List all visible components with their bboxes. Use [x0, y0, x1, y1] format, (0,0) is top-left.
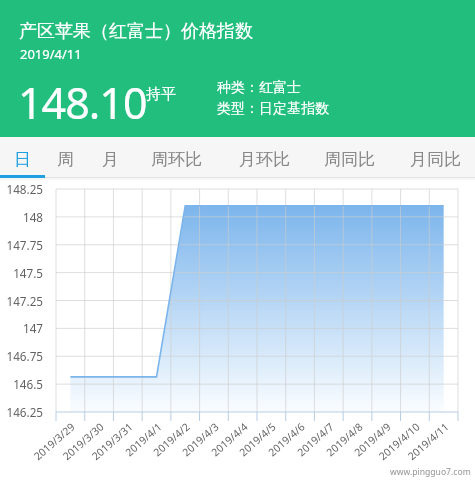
staticText: 2019/4/10 — [376, 420, 423, 463]
staticText: 2019/4/8 — [323, 420, 366, 459]
staticText: 日 — [14, 149, 31, 170]
staticText: 2019/4/11 — [20, 45, 82, 63]
staticText: 月同比 — [410, 149, 461, 170]
button[interactable]: 月环比 — [229, 140, 299, 178]
staticText: 2019/4/5 — [236, 420, 279, 459]
staticText: 2019/3/29 — [31, 420, 78, 463]
staticText: 周同比 — [324, 149, 375, 170]
staticText: 类型：日定基指数 — [217, 100, 329, 118]
staticText: 148.25 — [6, 181, 43, 197]
staticText: 2019/4/7 — [294, 420, 337, 459]
staticText: 2019/3/30 — [60, 420, 107, 463]
button[interactable]: 日 — [0, 140, 44, 178]
button[interactable]: 周环比 — [141, 140, 211, 178]
staticText: 147 — [22, 320, 43, 336]
button[interactable]: 周 — [43, 140, 87, 178]
staticText: 146.25 — [6, 404, 43, 420]
staticText: 月环比 — [239, 149, 290, 170]
staticText: 2019/4/3 — [179, 420, 222, 459]
button[interactable]: 周同比 — [314, 140, 384, 178]
staticText: 2019/4/11 — [405, 420, 452, 463]
staticText: 147.5 — [13, 265, 43, 281]
staticText: 2019/4/9 — [351, 420, 394, 459]
staticText: 周环比 — [151, 149, 202, 170]
staticText: 2019/4/2 — [150, 420, 193, 459]
button[interactable]: 月 — [88, 140, 132, 178]
staticText: 产区苹果（红富士）价格指数 — [19, 20, 253, 43]
staticText: 2019/4/4 — [208, 420, 251, 459]
staticText: 146.75 — [6, 348, 43, 364]
staticText: 周 — [57, 149, 74, 170]
button[interactable]: 月同比 — [400, 140, 470, 178]
staticText: 148.10 — [18, 73, 147, 132]
staticText: 种类：红富士 — [217, 79, 301, 97]
staticText: 月 — [102, 149, 119, 170]
staticText: 147.25 — [6, 293, 43, 309]
staticText: 2019/4/1 — [122, 420, 165, 459]
staticText: 2019/3/31 — [89, 420, 136, 463]
staticText: 2019/4/6 — [265, 420, 308, 459]
staticText: 147.75 — [6, 237, 43, 253]
staticText: www.pingguo7.com — [390, 466, 471, 478]
staticText: 持平 — [146, 85, 176, 104]
staticText: 148 — [22, 209, 43, 225]
staticText: 146.5 — [13, 376, 43, 392]
